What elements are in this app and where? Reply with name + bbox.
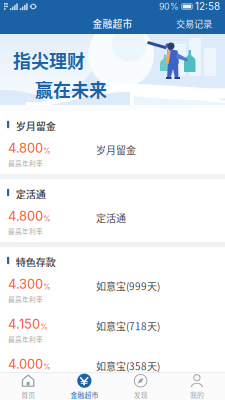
staticText: 4.000 xyxy=(8,356,43,372)
staticText: 岁月留金 xyxy=(96,143,136,157)
button[interactable]: 4.000 xyxy=(0,350,225,390)
staticText: 指尖理财 xyxy=(13,47,85,73)
button[interactable]: 首页 xyxy=(0,373,56,400)
button[interactable]: 我的 xyxy=(169,373,225,400)
staticText: 最高年利率 xyxy=(8,158,43,168)
staticText: 最高年利率 xyxy=(8,374,43,384)
staticText: % xyxy=(44,146,51,155)
staticText: % xyxy=(44,362,51,371)
staticText: 交易记录 xyxy=(176,17,212,30)
staticText: 如意宝(999天) xyxy=(96,279,160,293)
staticText: 90% xyxy=(159,1,179,12)
staticText: 赢在未来 xyxy=(35,76,107,102)
staticText: 最高年利率 xyxy=(8,294,43,304)
staticText: 首页 xyxy=(21,390,35,400)
button[interactable]: 金融超市 xyxy=(56,373,112,400)
staticText: % xyxy=(41,322,48,331)
staticText: 金融超市 xyxy=(92,16,132,31)
staticText: 发现 xyxy=(134,390,148,400)
staticText: 岁月留金 xyxy=(16,119,56,133)
staticText: 特色存款 xyxy=(16,255,56,269)
staticText: 如意宝(358天) xyxy=(96,359,160,373)
staticText: 定活通 xyxy=(96,211,126,225)
staticText: 最高年利率 xyxy=(8,334,43,344)
staticText: 4.300 xyxy=(8,276,43,292)
staticText: 如意宝(718天) xyxy=(96,319,160,333)
staticText: % xyxy=(44,214,51,223)
staticText: 我的 xyxy=(190,390,204,400)
button[interactable]: 4.800 xyxy=(0,202,225,242)
button[interactable]: 4.300 xyxy=(0,270,225,310)
staticText: 4.800 xyxy=(8,140,43,156)
button[interactable]: 4.800 xyxy=(0,134,225,174)
button[interactable]: 4.150 xyxy=(0,310,225,350)
button[interactable]: 交易记录 xyxy=(169,13,225,34)
staticText: % xyxy=(44,282,51,291)
staticText: 定活通 xyxy=(16,187,46,201)
staticText: 金融超市 xyxy=(70,390,98,400)
staticText: 4.150 xyxy=(8,316,40,332)
button[interactable]: 发现 xyxy=(112,373,169,400)
staticText: 最高年利率 xyxy=(8,226,43,236)
staticText: 12:58 xyxy=(195,0,220,12)
staticText: 4.800 xyxy=(8,208,43,224)
